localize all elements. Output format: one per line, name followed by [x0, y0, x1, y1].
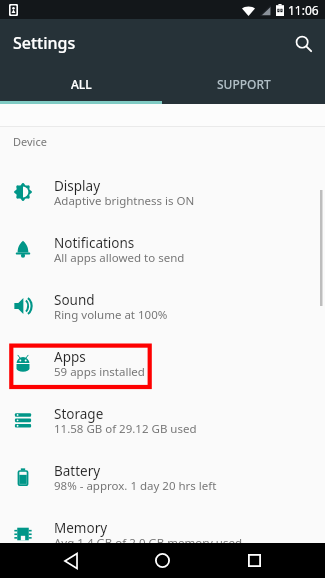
staticText: Adaptive brightness is ON [54, 193, 195, 209]
staticText: Notifications [54, 234, 135, 252]
button[interactable]: Notifications [0, 220, 325, 277]
staticText: SUPPORT [217, 76, 271, 92]
button[interactable]: Memory [0, 505, 325, 543]
button[interactable]: Sound [0, 277, 325, 334]
staticText: Avg 1.4 GB of 2.0 GB memory used [54, 535, 243, 543]
staticText: ALL [71, 76, 92, 92]
staticText: 11:06 [288, 2, 319, 18]
button[interactable]: Apps [0, 334, 325, 391]
staticText: Battery [54, 462, 101, 480]
staticText: Ring volume at 100% [54, 307, 168, 323]
button[interactable]: Back [25, 543, 117, 578]
button[interactable]: Search [281, 21, 325, 65]
button[interactable]: SUPPORT [162, 67, 325, 101]
button[interactable]: Home [116, 543, 208, 578]
button[interactable]: Recents [208, 543, 300, 578]
staticText: All apps allowed to send [54, 250, 185, 266]
staticText: Sound [54, 291, 95, 309]
button[interactable]: Storage [0, 391, 325, 448]
staticText: Display [54, 177, 101, 195]
staticText: 11.58 GB of 29.12 GB used [54, 421, 197, 437]
staticText: 98% - approx. 1 day 20 hrs left [54, 478, 217, 494]
staticText: Apps [54, 348, 86, 366]
button[interactable]: Battery [0, 448, 325, 505]
button[interactable]: Display [0, 163, 325, 220]
staticText: Settings [13, 32, 76, 54]
staticText: Memory [54, 519, 108, 537]
button[interactable]: ALL [0, 67, 162, 101]
staticText: 59 apps installed [54, 364, 145, 380]
staticText: Device [13, 134, 47, 149]
staticText: Storage [54, 405, 104, 423]
